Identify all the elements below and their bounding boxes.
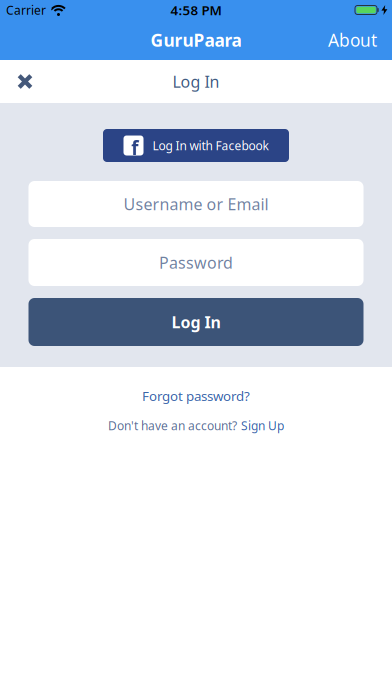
button[interactable]: f (103, 129, 289, 162)
button[interactable]: Password (28, 239, 363, 286)
staticText: Password (159, 252, 233, 273)
staticText: Don't have an account? (108, 418, 237, 434)
button[interactable] (0, 64, 32, 98)
staticText: f (131, 135, 138, 160)
staticText: Username or Email (123, 193, 268, 215)
button[interactable]: Log In (28, 298, 363, 346)
staticText: GuruPaara (150, 28, 241, 51)
button[interactable]: Forgot password? (142, 387, 250, 405)
staticText: Log In with Facebook (152, 137, 268, 153)
button[interactable]: Username or Email (28, 181, 363, 227)
staticText: About (328, 28, 377, 51)
staticText: Log In (172, 71, 219, 92)
button[interactable]: About (328, 20, 392, 59)
staticText: Carrier (6, 2, 46, 18)
staticText: Log In (171, 311, 220, 333)
button[interactable]: Sign Up (241, 418, 284, 434)
staticText: 4:58 PM (170, 1, 221, 19)
staticText: Forgot password? (142, 387, 250, 405)
staticText: Sign Up (241, 418, 284, 434)
